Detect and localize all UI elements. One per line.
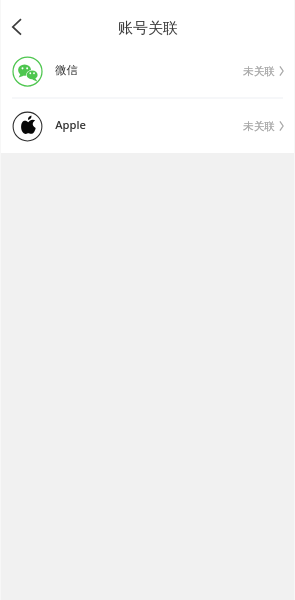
staticText: Apple: [55, 117, 86, 132]
staticText: 微信: [55, 63, 78, 77]
staticText: 未关联: [243, 65, 275, 78]
button[interactable]: 微信: [0, 45, 295, 97]
staticText: 未关联: [243, 65, 275, 78]
staticText: Apple: [55, 117, 86, 132]
staticText: 账号关联: [118, 19, 178, 38]
staticText: 账号关联: [118, 19, 178, 38]
button[interactable]: Back: [3, 13, 31, 41]
staticText: 未关联: [243, 120, 275, 133]
staticText: 未关联: [243, 120, 275, 133]
staticText: 微信: [55, 63, 78, 77]
button[interactable]: Apple: [0, 99, 295, 153]
